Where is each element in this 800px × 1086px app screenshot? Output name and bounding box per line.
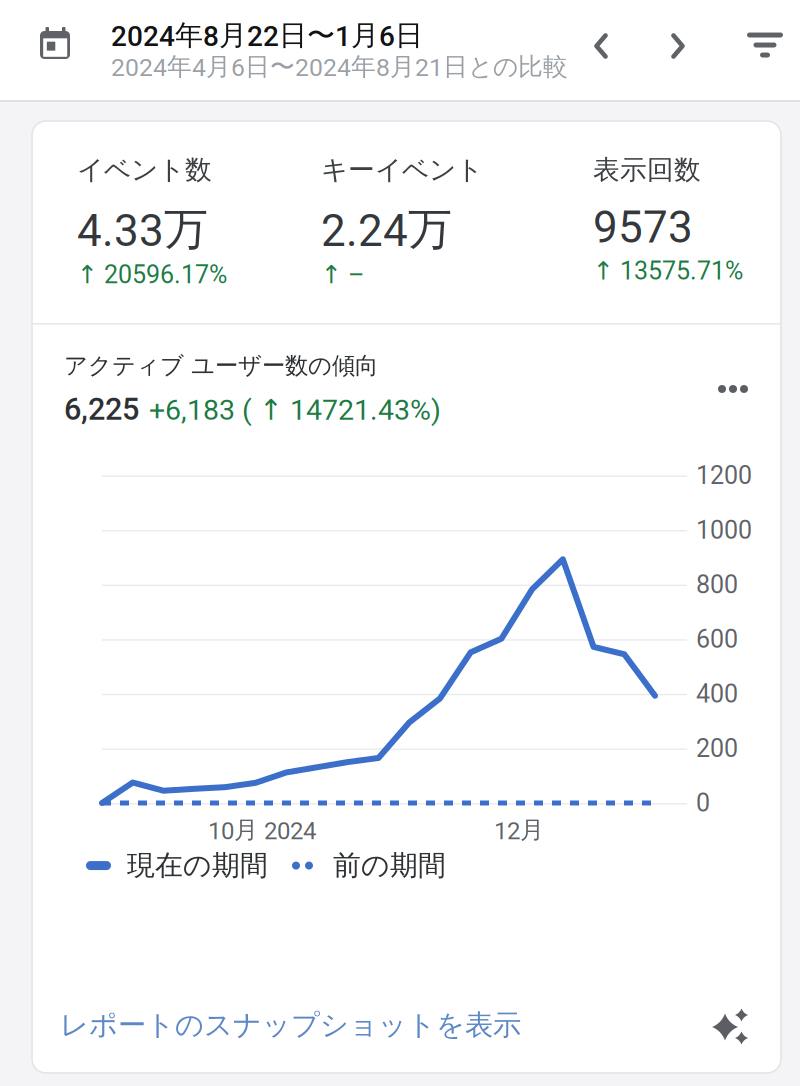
staticText: 2024年8月22日〜1月6日: [111, 18, 423, 53]
staticText: 現在の期間: [127, 848, 268, 883]
button[interactable]: Next period: [646, 0, 710, 96]
staticText: 800: [696, 570, 738, 599]
button[interactable]: Filter: [733, 0, 797, 95]
staticText: アクティブ ユーザー数の傾向: [64, 351, 378, 380]
staticText: 200: [696, 734, 738, 763]
staticText: 表示回数: [593, 153, 701, 187]
staticText: 12月: [494, 815, 544, 845]
staticText: 前の期間: [333, 848, 446, 883]
staticText: ↑ 13575.71%: [593, 256, 743, 286]
staticText: 10月 2024: [208, 815, 316, 845]
staticText: ↑ –: [321, 260, 364, 289]
button[interactable]: 2024年8月22日〜1月6日: [111, 0, 573, 100]
staticText: 0: [696, 788, 710, 818]
button[interactable]: Date range: [0, 0, 110, 100]
staticText: 1000: [696, 515, 752, 545]
staticText: イベント数: [77, 153, 212, 187]
staticText: 9573: [593, 202, 693, 253]
staticText: 6,225: [64, 391, 139, 427]
button[interactable]: Previous period: [569, 0, 633, 96]
button[interactable]: レポートのスナップショットを表示: [32, 982, 781, 1068]
staticText: レポートのスナップショットを表示: [60, 1007, 521, 1043]
staticText: 2.24万: [321, 202, 452, 257]
staticText: 600: [696, 625, 738, 654]
staticText: キーイベント: [321, 153, 483, 187]
staticText: 2024年4月6日〜2024年8月21日との比較: [111, 51, 568, 82]
staticText: ↑ 20596.17%: [77, 260, 227, 289]
staticText: 400: [696, 679, 738, 708]
staticText: 1200: [696, 461, 752, 490]
staticText: 4.33万: [77, 202, 208, 257]
button[interactable]: More options: [695, 359, 771, 419]
staticText: +6,183 ( ↑ 14721.43%): [149, 393, 441, 427]
